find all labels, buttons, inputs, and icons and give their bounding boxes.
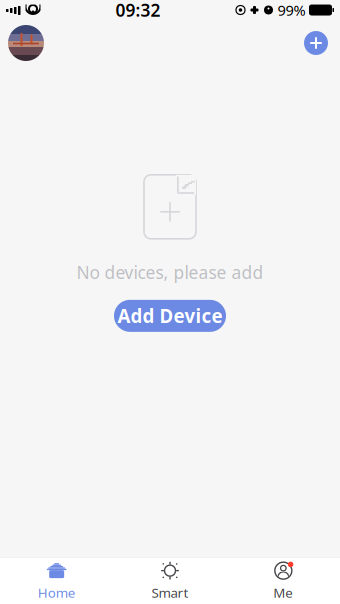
button[interactable]: Profile (8, 25, 44, 61)
staticText: 99% (277, 0, 305, 20)
staticText: Add Device (117, 303, 222, 328)
button[interactable]: Home (0, 555, 113, 604)
button[interactable]: Add Device (114, 300, 226, 332)
staticText: Smart (151, 584, 188, 601)
button[interactable]: Me (227, 555, 340, 604)
button[interactable]: Smart (113, 555, 227, 604)
staticText: Me (273, 584, 293, 601)
staticText: Home (38, 584, 76, 601)
staticText: No devices, please add (76, 261, 263, 284)
staticText: 09:32 (115, 0, 160, 21)
button[interactable]: Add (300, 27, 332, 59)
